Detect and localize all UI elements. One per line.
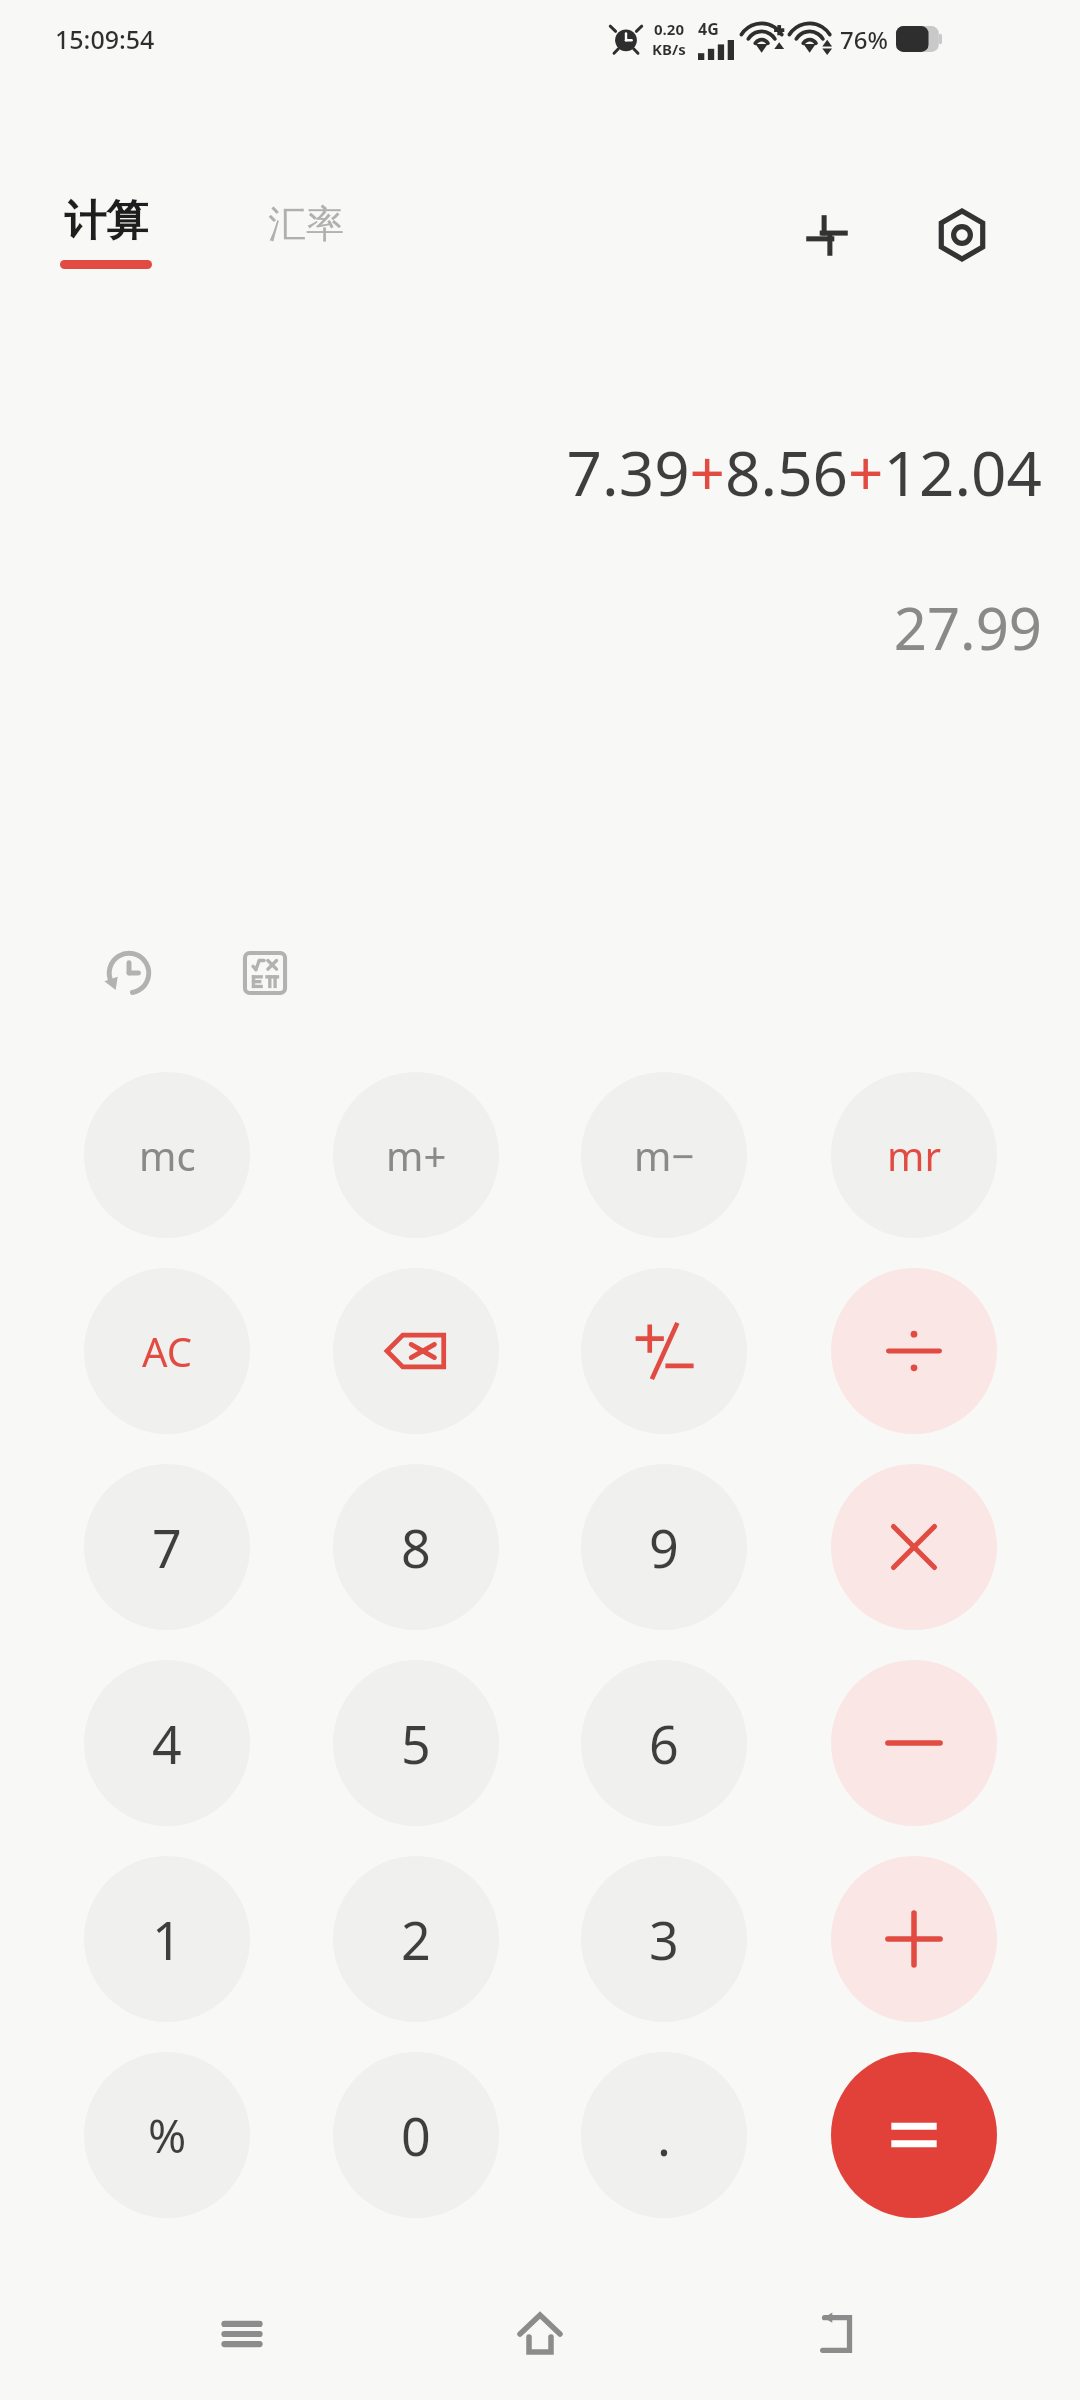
button[interactable]: 2 [333,1856,499,2022]
staticText: 5 [401,1708,431,1779]
button[interactable]: Add [831,1856,997,2022]
button[interactable]: mr [831,1072,997,1238]
button[interactable]: Recents [186,2278,298,2390]
staticText: m+ [386,1128,447,1182]
button[interactable]: 8 [333,1464,499,1630]
button[interactable]: Subtract [831,1660,997,1826]
button[interactable]: Divide [831,1268,997,1434]
staticText: 8 [401,1512,431,1583]
button[interactable]: History [86,930,172,1016]
staticText: mr [887,1128,941,1182]
button[interactable]: 计算 [60,195,152,269]
staticText: 1 [152,1904,182,1975]
button[interactable]: 7 [84,1464,250,1630]
staticText: KB/s [652,39,686,59]
button[interactable]: Home [484,2278,596,2390]
staticText: 6 [649,1708,679,1779]
button[interactable]: 0 [333,2052,499,2218]
staticText: 76% [840,23,888,56]
button[interactable]: Equals [831,2052,997,2218]
button[interactable]: AC [84,1268,250,1434]
button[interactable]: m+ [333,1072,499,1238]
staticText: 7.39+8.56+12.04 [0,430,1042,514]
button[interactable]: 5 [333,1660,499,1826]
staticText: % [148,2104,187,2167]
staticText: mc [139,1128,196,1182]
button[interactable]: Multiply [831,1464,997,1630]
button[interactable]: 6 [581,1660,747,1826]
staticText: 9 [649,1512,679,1583]
button[interactable]: Backspace [333,1268,499,1434]
button[interactable]: Settings [925,198,999,272]
button[interactable]: % [84,2052,250,2218]
staticText: 0 [401,2100,431,2171]
button[interactable]: 汇率 [268,200,344,248]
staticText: 3 [649,1904,679,1975]
button[interactable]: 9 [581,1464,747,1630]
staticText: AC [142,1324,193,1378]
button[interactable]: Scientific [222,930,308,1016]
button[interactable]: 3 [581,1856,747,2022]
button[interactable]: m− [581,1072,747,1238]
button[interactable]: Collapse [790,198,864,272]
button[interactable]: Plus minus [581,1268,747,1434]
button[interactable]: . [581,2052,747,2218]
staticText: 27.99 [0,588,1042,667]
staticText: m− [634,1128,695,1182]
staticText: 15:09:54 [55,22,155,56]
staticText: 4G [698,18,719,40]
staticText: 计算 [64,195,148,248]
staticText: 0.20 [654,19,684,39]
button[interactable]: 1 [84,1856,250,2022]
staticText: . [657,2100,671,2171]
button[interactable]: mc [84,1072,250,1238]
staticText: 2 [401,1904,431,1975]
staticText: 7 [152,1512,182,1583]
staticText: 4 [152,1708,182,1779]
button[interactable]: 4 [84,1660,250,1826]
button[interactable]: Back [782,2278,894,2390]
